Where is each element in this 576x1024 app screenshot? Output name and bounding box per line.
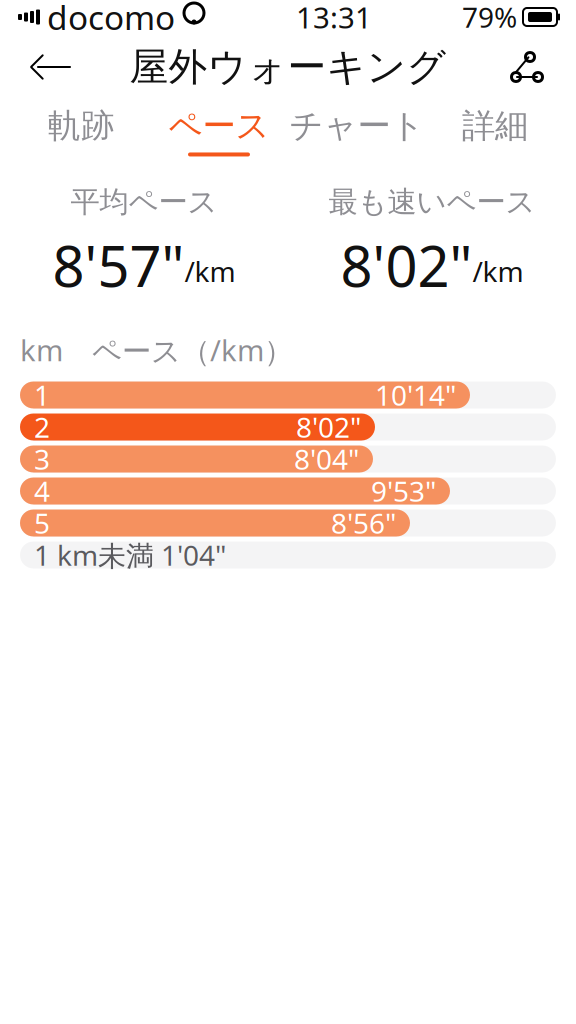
staticText: 1 — [34, 376, 50, 414]
staticText: ペース — [168, 105, 269, 146]
staticText: 屋外ウォーキング — [129, 43, 446, 91]
staticText: 10'14" — [375, 376, 456, 414]
staticText: 3 — [34, 440, 50, 478]
staticText: 8'56" — [331, 504, 396, 542]
staticText: 13:31 — [296, 0, 372, 36]
button[interactable]: 共有 — [492, 38, 562, 96]
button[interactable]: チャート — [288, 100, 426, 162]
button[interactable]: ペース — [150, 100, 288, 162]
staticText: /km — [472, 253, 523, 290]
staticText: 5 — [34, 504, 50, 542]
staticText: 詳細 — [462, 105, 528, 146]
staticText: 4 — [34, 472, 50, 510]
staticText: 平均ペース — [70, 184, 217, 220]
button[interactable]: 戻る — [14, 38, 84, 96]
staticText: 9'53" — [371, 472, 436, 510]
staticText: 2 — [34, 408, 50, 446]
staticText: 最も速いペース — [328, 184, 535, 220]
staticText: 1 km未満 1'04" — [34, 536, 226, 574]
staticText: 79% — [462, 0, 517, 36]
staticText: docomo — [47, 0, 175, 39]
staticText: km ペース（/km） — [20, 330, 293, 369]
staticText: 8'02" — [296, 408, 361, 446]
button[interactable]: 軌跡 — [12, 100, 150, 162]
staticText: 8'57" — [52, 228, 184, 302]
button[interactable]: 詳細 — [426, 100, 564, 162]
staticText: 8'04" — [294, 440, 359, 478]
staticText: /km — [184, 253, 235, 290]
staticText: チャート — [289, 105, 424, 146]
staticText: 8'02" — [340, 228, 472, 302]
staticText: 軌跡 — [48, 105, 114, 146]
